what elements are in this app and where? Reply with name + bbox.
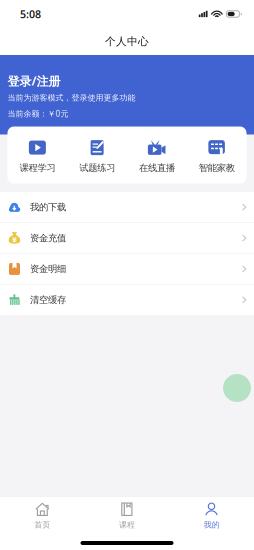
staticText: 个人中心 <box>105 35 149 48</box>
button[interactable]: 我的下载 <box>0 192 254 223</box>
button[interactable]: 课程 <box>85 502 169 530</box>
staticText: 我的下载 <box>30 201 66 213</box>
staticText: 5:08 <box>20 7 41 21</box>
button[interactable]: 智能家教 <box>187 140 247 174</box>
button[interactable]: 课程学习 <box>7 140 67 174</box>
button[interactable]: 清空缓存 <box>0 285 254 315</box>
staticText: 首页 <box>34 520 50 530</box>
button[interactable]: 试题练习 <box>67 140 127 174</box>
staticText: 清空缓存 <box>30 294 66 306</box>
staticText: 课程学习 <box>19 162 55 174</box>
button[interactable]: 首页 <box>0 502 85 530</box>
staticText: 资金明细 <box>30 263 66 275</box>
staticText: 登录/注册 <box>7 73 60 89</box>
staticText: 资金充值 <box>30 232 66 244</box>
staticText: 在线直播 <box>139 162 175 174</box>
staticText: 我的 <box>204 520 220 530</box>
staticText: 试题练习 <box>79 162 115 174</box>
staticText: 智能家教 <box>199 162 235 174</box>
button[interactable]: 我的 <box>169 502 254 530</box>
staticText: 课程 <box>119 520 135 530</box>
staticText: 当前为游客模式，登录使用更多功能 <box>7 93 135 103</box>
button[interactable]: 资金明细 <box>0 254 254 285</box>
button[interactable]: 资金充值 <box>0 223 254 254</box>
button[interactable]: 在线直播 <box>127 140 187 174</box>
staticText: 当前余额：￥0元 <box>7 108 68 119</box>
